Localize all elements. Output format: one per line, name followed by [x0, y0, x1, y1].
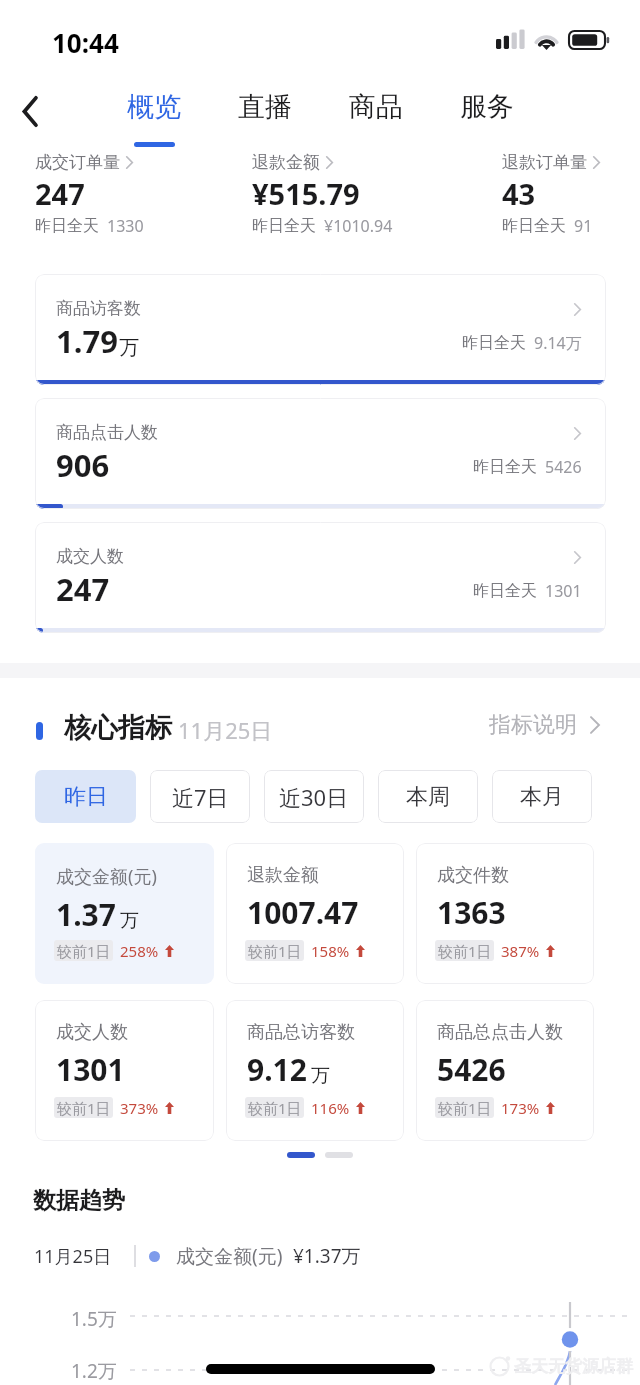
staticText: 万 — [119, 335, 139, 360]
staticText: 昨日全天 — [473, 581, 537, 601]
staticText: 昨日 — [64, 783, 108, 811]
staticText: 43 — [502, 174, 536, 213]
staticText: 万 — [120, 909, 139, 933]
button[interactable]: 成交订单量 — [35, 152, 144, 237]
staticText: 1.5万 — [71, 1306, 117, 1332]
button[interactable]: Back — [3, 84, 57, 138]
staticText: 退款金额 — [247, 864, 319, 887]
button[interactable]: 商品点击人数 — [35, 398, 606, 509]
staticText: 1301 — [545, 580, 582, 602]
staticText: 昨日全天 — [462, 333, 526, 353]
staticText: 昨日全天 — [35, 216, 99, 236]
staticText: 昨日全天 — [473, 457, 537, 477]
staticText: 近30日 — [279, 782, 349, 812]
staticText: 较前1日 — [57, 1098, 111, 1118]
button[interactable]: 商品总访客数 — [226, 1000, 404, 1141]
button[interactable]: 昨日 — [35, 770, 136, 823]
button[interactable]: 概览 — [114, 78, 194, 150]
staticText: 116% — [311, 1098, 350, 1118]
staticText: 5426 — [437, 1049, 506, 1090]
staticText: 373% — [120, 1098, 159, 1118]
staticText: 成交订单量 — [35, 152, 120, 173]
staticText: 昨日全天 — [502, 216, 566, 236]
staticText: 本周 — [406, 783, 450, 811]
staticText: 906 — [56, 444, 110, 486]
staticText: 圣天无货源店群 — [514, 1356, 633, 1377]
button[interactable]: 成交人数 — [35, 1000, 214, 1141]
staticText: 较前1日 — [57, 941, 111, 961]
staticText: 9.12 — [247, 1049, 307, 1090]
staticText: 昨日全天 — [252, 216, 316, 236]
button[interactable]: 指标说明 — [489, 711, 600, 739]
staticText: 1363 — [437, 892, 506, 933]
staticText: 核心指标 — [64, 711, 172, 745]
staticText: ¥1010.94 — [324, 215, 393, 237]
staticText: 247 — [35, 174, 85, 213]
staticText: 退款订单量 — [502, 152, 587, 173]
button[interactable]: 近30日 — [264, 770, 364, 823]
staticText: 258% — [120, 941, 159, 961]
button[interactable]: 直播 — [225, 78, 305, 150]
staticText: 10:44 — [52, 25, 119, 60]
staticText: 1301 — [56, 1049, 125, 1090]
staticText: 商品总点击人数 — [437, 1021, 563, 1044]
button[interactable]: 退款金额 — [226, 843, 404, 984]
button[interactable]: 本周 — [378, 770, 478, 823]
staticText: 较前1日 — [248, 941, 302, 961]
button[interactable]: 退款订单量 — [502, 152, 600, 237]
button[interactable]: 近7日 — [150, 770, 250, 823]
button[interactable]: 商品 — [336, 78, 416, 150]
staticText: 11月25日 — [178, 715, 273, 745]
staticText: 1007.47 — [247, 892, 359, 933]
staticText: 11月25日 — [34, 1244, 112, 1269]
staticText: 5426 — [545, 456, 582, 478]
staticText: 商品 — [349, 90, 403, 124]
staticText: 商品访客数 — [56, 298, 141, 319]
staticText: 较前1日 — [438, 941, 492, 961]
button[interactable]: 本月 — [492, 770, 592, 823]
button[interactable]: 成交金额(元) — [35, 843, 214, 984]
staticText: 数据趋势 — [33, 1186, 125, 1215]
button[interactable]: 商品总点击人数 — [416, 1000, 594, 1141]
staticText: 商品点击人数 — [56, 422, 158, 443]
staticText: 概览 — [127, 90, 181, 124]
staticText: 247 — [56, 568, 110, 610]
staticText: ¥1.37万 — [293, 1243, 361, 1269]
staticText: ¥515.79 — [252, 174, 360, 213]
button[interactable]: 成交件数 — [416, 843, 594, 984]
staticText: 1.37 — [56, 894, 116, 935]
staticText: 本月 — [520, 783, 564, 811]
button[interactable]: 成交人数 — [35, 522, 606, 633]
staticText: 指标说明 — [489, 711, 577, 739]
staticText: 1330 — [107, 215, 144, 237]
button[interactable]: 退款金额 — [252, 152, 393, 237]
staticText: 1.79 — [56, 320, 118, 362]
staticText: 387% — [501, 941, 540, 961]
staticText: 158% — [311, 941, 350, 961]
staticText: 较前1日 — [248, 1098, 302, 1118]
staticText: 较前1日 — [438, 1098, 492, 1118]
button[interactable]: 商品访客数 — [35, 274, 606, 385]
staticText: 成交人数 — [56, 546, 124, 567]
staticText: 173% — [501, 1098, 540, 1118]
staticText: 成交人数 — [56, 1021, 128, 1044]
staticText: 直播 — [238, 90, 292, 124]
staticText: 成交金额(元) — [56, 864, 157, 889]
staticText: 万 — [311, 1064, 330, 1088]
staticText: 成交件数 — [437, 864, 509, 887]
button[interactable]: 服务 — [447, 78, 527, 150]
staticText: 近7日 — [172, 782, 229, 812]
staticText: 9.14万 — [534, 332, 582, 354]
staticText: 1.2万 — [71, 1358, 117, 1384]
staticText: 成交金额(元) — [176, 1243, 283, 1269]
staticText: 退款金额 — [252, 152, 320, 173]
staticText: 91 — [574, 215, 593, 237]
staticText: 商品总访客数 — [247, 1021, 355, 1044]
staticText: 服务 — [460, 90, 514, 124]
